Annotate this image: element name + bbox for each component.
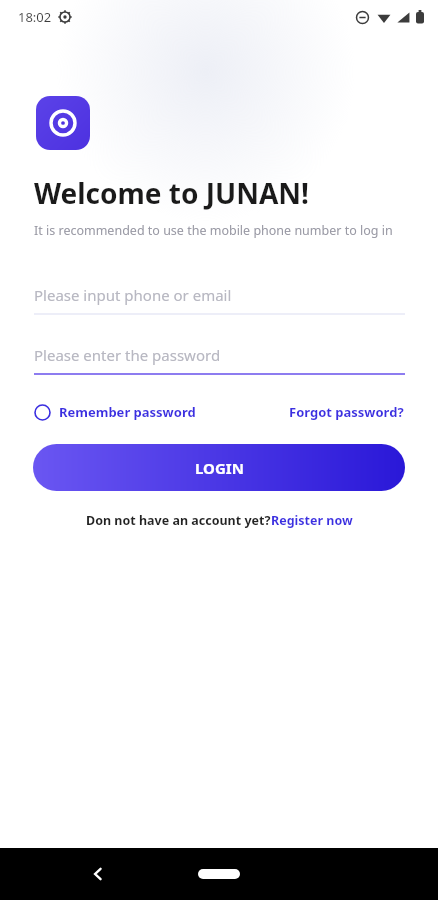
staticText: Please input phone or email xyxy=(34,285,232,305)
button[interactable]: LOGIN xyxy=(33,444,405,491)
button[interactable]: Back xyxy=(78,854,118,894)
staticText: Remember password xyxy=(59,403,196,421)
button[interactable]: Password input xyxy=(34,337,405,375)
staticText: Please enter the password xyxy=(34,345,221,365)
button[interactable]: Remember password xyxy=(34,399,196,425)
staticText: Forgot password? xyxy=(289,403,404,421)
staticText: Welcome to JUNAN! xyxy=(34,174,309,212)
staticText: It is recommended to use the mobile phon… xyxy=(34,222,393,239)
button[interactable]: Forgot password? xyxy=(289,399,404,425)
button[interactable]: App logo xyxy=(36,96,90,150)
staticText: LOGIN xyxy=(195,458,244,478)
button[interactable]: Home xyxy=(191,861,247,887)
button[interactable]: Phone or email input xyxy=(34,277,405,315)
staticText: Don not have an account yet? xyxy=(86,512,271,529)
button[interactable]: Register now xyxy=(271,512,353,529)
staticText: Register now xyxy=(271,512,353,529)
staticText: 18:02 xyxy=(18,8,52,26)
